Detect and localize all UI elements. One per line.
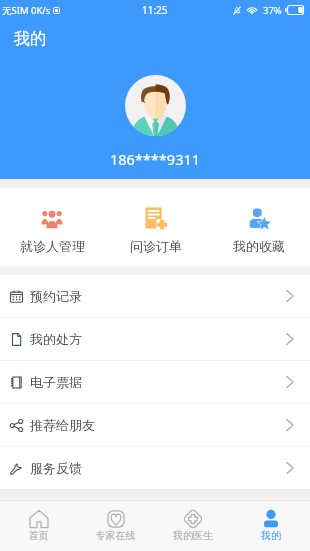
button[interactable]: 服务反馈	[0, 447, 310, 489]
button[interactable]: 我的收藏	[207, 188, 310, 266]
button[interactable]: 首页	[0, 501, 77, 551]
button[interactable]: 专家在线	[77, 501, 154, 551]
staticText: 首页	[0, 529, 77, 542]
staticText: 我的收藏	[233, 238, 285, 254]
staticText: 无SIM 0K/s	[2, 4, 51, 17]
button[interactable]: 就诊人管理	[0, 188, 104, 266]
staticText: 服务反馈	[30, 460, 82, 476]
button[interactable]: 我的处方	[0, 318, 310, 360]
staticText: 专家在线	[77, 529, 154, 542]
staticText: 推荐给朋友	[30, 417, 95, 433]
staticText: 预约记录	[30, 288, 82, 304]
staticText: 就诊人管理	[20, 238, 85, 254]
staticText: 电子票据	[30, 374, 82, 390]
staticText: 11:25	[142, 3, 168, 17]
staticText: 我的	[232, 529, 310, 542]
staticText: 37%	[263, 4, 282, 17]
button[interactable]: 预约记录	[0, 275, 310, 317]
button[interactable]: 我的医生	[154, 501, 232, 551]
button[interactable]: 问诊订单	[104, 188, 207, 266]
button[interactable]: 我的	[232, 501, 310, 551]
staticText: 问诊订单	[130, 238, 182, 254]
staticText: 186****9311	[0, 149, 310, 169]
button[interactable]: 电子票据	[0, 361, 310, 403]
staticText: 我的处方	[30, 331, 82, 347]
staticText: 我的	[14, 29, 46, 49]
other: Silent mode	[233, 6, 241, 15]
button[interactable]: 推荐给朋友	[0, 404, 310, 446]
staticText: 我的医生	[154, 529, 232, 542]
